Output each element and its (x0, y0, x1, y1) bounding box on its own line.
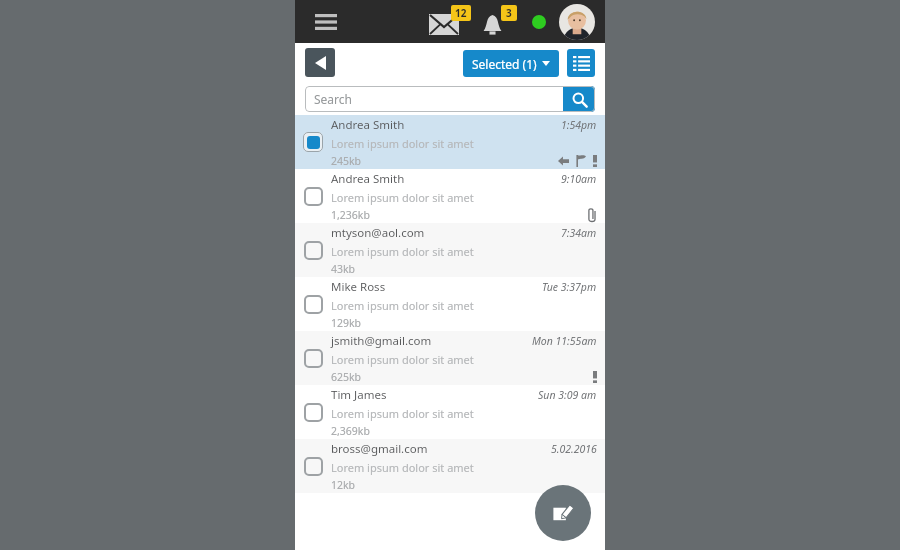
staticText: Tim James (331, 387, 538, 403)
button[interactable]: Menu (309, 5, 343, 39)
button[interactable]: jsmith@gmail.com (295, 331, 605, 385)
staticText: Lorem ipsum dolor sit amet (331, 244, 474, 259)
staticText: Selected (1) (472, 56, 537, 72)
button[interactable]: List view (567, 49, 595, 77)
staticText: jsmith@gmail.com (331, 333, 532, 349)
button[interactable]: bross@gmail.com (295, 439, 605, 493)
staticText: Lorem ipsum dolor sit amet (331, 352, 474, 367)
button[interactable]: Andrea Smith (295, 169, 605, 223)
staticText: mtyson@aol.com (331, 225, 561, 241)
staticText: bross@gmail.com (331, 441, 551, 457)
button[interactable]: Online status (525, 8, 553, 36)
staticText: 2,369kb (331, 424, 597, 438)
staticText: 43kb (331, 262, 597, 276)
button[interactable]: Messages, 12 unread (427, 5, 471, 39)
button[interactable]: Search (305, 86, 595, 112)
button[interactable]: Back (305, 48, 335, 77)
button[interactable]: Notifications, 3 new (481, 5, 517, 39)
staticText: Mon 11:55am (532, 334, 597, 348)
staticText: 129kb (331, 316, 597, 330)
staticText: Lorem ipsum dolor sit amet (331, 190, 474, 205)
staticText: 1:54pm (561, 118, 597, 132)
staticText: Lorem ipsum dolor sit amet (331, 298, 474, 313)
staticText: Sun 3:09 am (538, 388, 597, 402)
staticText: 7:34am (561, 226, 597, 240)
button[interactable]: Andrea Smith (295, 115, 605, 169)
staticText: 3 (506, 6, 512, 20)
button[interactable]: Compose (535, 485, 591, 541)
staticText: 9:10am (561, 172, 597, 186)
staticText: Lorem ipsum dolor sit amet (331, 406, 474, 421)
staticText: Lorem ipsum dolor sit amet (331, 460, 474, 475)
button[interactable]: Tim James (295, 385, 605, 439)
staticText: Lorem ipsum dolor sit amet (331, 136, 474, 151)
staticText: 625kb (331, 370, 593, 384)
staticText: Tue 3:37pm (542, 280, 597, 294)
staticText: 12 (455, 6, 467, 20)
staticText: Andrea Smith (331, 171, 561, 187)
button[interactable]: mtyson@aol.com (295, 223, 605, 277)
button[interactable]: Selected (1) (463, 50, 559, 77)
staticText: 1,236kb (331, 208, 588, 222)
button[interactable]: Profile (559, 4, 595, 40)
button[interactable]: Mike Ross (295, 277, 605, 331)
staticText: 245kb (331, 154, 558, 168)
staticText: 12kb (331, 478, 597, 492)
staticText: Mike Ross (331, 279, 542, 295)
staticText: Search (314, 91, 563, 107)
staticText: Andrea Smith (331, 117, 561, 133)
staticText: 5.02.2016 (551, 442, 597, 456)
